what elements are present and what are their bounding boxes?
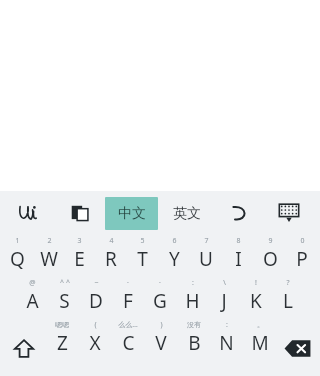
- staticText: N: [219, 330, 234, 356]
- staticText: :: [192, 278, 194, 288]
- staticText: ): [160, 320, 163, 330]
- staticText: A: [26, 288, 39, 314]
- staticText: W: [40, 246, 58, 272]
- staticText: 英文: [173, 205, 201, 223]
- staticText: H: [185, 288, 200, 314]
- staticText: 8: [236, 236, 241, 246]
- button[interactable]: ): [144, 319, 177, 376]
- button[interactable]: 7: [190, 235, 222, 277]
- button[interactable]: :: [176, 277, 208, 319]
- staticText: T: [137, 246, 148, 272]
- staticText: P: [296, 246, 308, 272]
- staticText: S: [59, 288, 70, 314]
- staticText: 2: [47, 236, 52, 246]
- staticText: 没有: [187, 320, 201, 329]
- button[interactable]: 4: [95, 235, 126, 277]
- staticText: O: [263, 246, 278, 272]
- staticText: J: [221, 288, 227, 314]
- staticText: ~: [94, 278, 99, 288]
- button[interactable]: \: [208, 277, 240, 319]
- button[interactable]: 么么…: [111, 319, 144, 376]
- button[interactable]: 2: [33, 235, 64, 277]
- button[interactable]: 嗯嗯: [45, 319, 78, 376]
- button[interactable]: 没有: [177, 319, 210, 376]
- staticText: 7: [204, 236, 209, 246]
- button[interactable]: 英文: [160, 197, 213, 230]
- button[interactable]: !: [240, 277, 272, 319]
- staticText: 中文: [118, 205, 146, 223]
- button[interactable]: (: [78, 319, 111, 376]
- staticText: ·: [159, 278, 161, 288]
- staticText: 6: [172, 236, 177, 246]
- button[interactable]: 1: [2, 235, 33, 277]
- staticText: ^ ^: [60, 278, 70, 288]
- staticText: \: [223, 278, 226, 288]
- staticText: (: [94, 320, 97, 330]
- staticText: @: [29, 278, 36, 288]
- staticText: ·: [127, 278, 129, 288]
- staticText: I: [235, 246, 242, 272]
- staticText: D: [89, 288, 103, 314]
- staticText: 3: [77, 236, 82, 246]
- staticText: B: [188, 330, 201, 356]
- staticText: 么么…: [118, 320, 138, 330]
- button[interactable]: 5: [126, 235, 158, 277]
- button[interactable]: Backspace: [277, 328, 317, 368]
- staticText: C: [122, 330, 135, 356]
- button[interactable]: 3: [64, 235, 95, 277]
- staticText: V: [155, 330, 167, 356]
- button[interactable]: 9: [254, 235, 286, 277]
- staticText: 。: [257, 320, 264, 329]
- button[interactable]: 8: [222, 235, 254, 277]
- staticText: 4: [109, 236, 114, 246]
- staticText: 1: [15, 236, 20, 246]
- staticText: X: [89, 330, 101, 356]
- staticText: K: [250, 288, 262, 314]
- staticText: E: [74, 246, 85, 272]
- button[interactable]: ^ ^: [48, 277, 80, 319]
- staticText: F: [123, 288, 133, 314]
- staticText: !: [255, 278, 257, 288]
- button[interactable]: Shift: [7, 331, 41, 365]
- staticText: Q: [10, 246, 25, 272]
- staticText: :: [226, 320, 228, 330]
- button[interactable]: Clipboard: [63, 196, 97, 230]
- staticText: 0: [300, 236, 305, 246]
- button[interactable]: ·: [144, 277, 176, 319]
- staticText: Y: [169, 246, 180, 272]
- staticText: 9: [268, 236, 273, 246]
- button[interactable]: ·: [112, 277, 144, 319]
- button[interactable]: 0: [286, 235, 318, 277]
- staticText: M: [251, 330, 269, 356]
- button[interactable]: Undo: [222, 196, 256, 230]
- staticText: Z: [57, 330, 68, 356]
- staticText: 嗯嗯: [55, 320, 69, 329]
- button[interactable]: 。: [243, 319, 276, 376]
- button[interactable]: ~: [80, 277, 112, 319]
- button[interactable]: ?: [272, 277, 304, 319]
- button[interactable]: 中文: [105, 197, 158, 230]
- staticText: R: [105, 246, 117, 272]
- staticText: G: [153, 288, 167, 314]
- button[interactable]: 6: [158, 235, 190, 277]
- button[interactable]: Switch keyboard: [272, 196, 306, 230]
- staticText: 5: [140, 236, 145, 246]
- staticText: U: [199, 246, 213, 272]
- button[interactable]: :: [210, 319, 243, 376]
- staticText: ?: [286, 278, 290, 288]
- staticText: L: [283, 288, 293, 314]
- button[interactable]: @: [16, 277, 48, 319]
- button[interactable]: Handwriting input: [14, 196, 48, 230]
